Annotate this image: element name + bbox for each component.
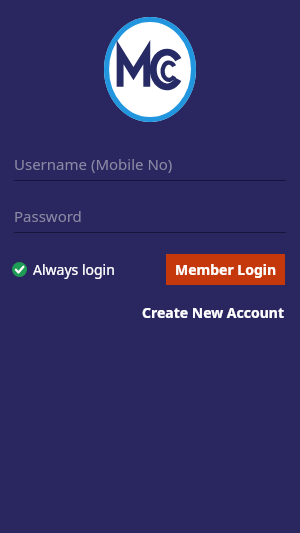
button[interactable]: Username (Mobile No) (14, 154, 286, 181)
staticText: Always login (33, 260, 115, 279)
button[interactable]: Always login (12, 260, 115, 279)
staticText: Create New Account (142, 303, 285, 322)
other: MC logo (104, 17, 196, 122)
button[interactable]: Member Login (166, 254, 285, 285)
button[interactable]: Password (14, 206, 286, 233)
button[interactable]: Create New Account (142, 301, 285, 324)
staticText: Password (14, 206, 82, 226)
staticText: Username (Mobile No) (14, 154, 173, 174)
staticText: Member Login (175, 260, 277, 279)
